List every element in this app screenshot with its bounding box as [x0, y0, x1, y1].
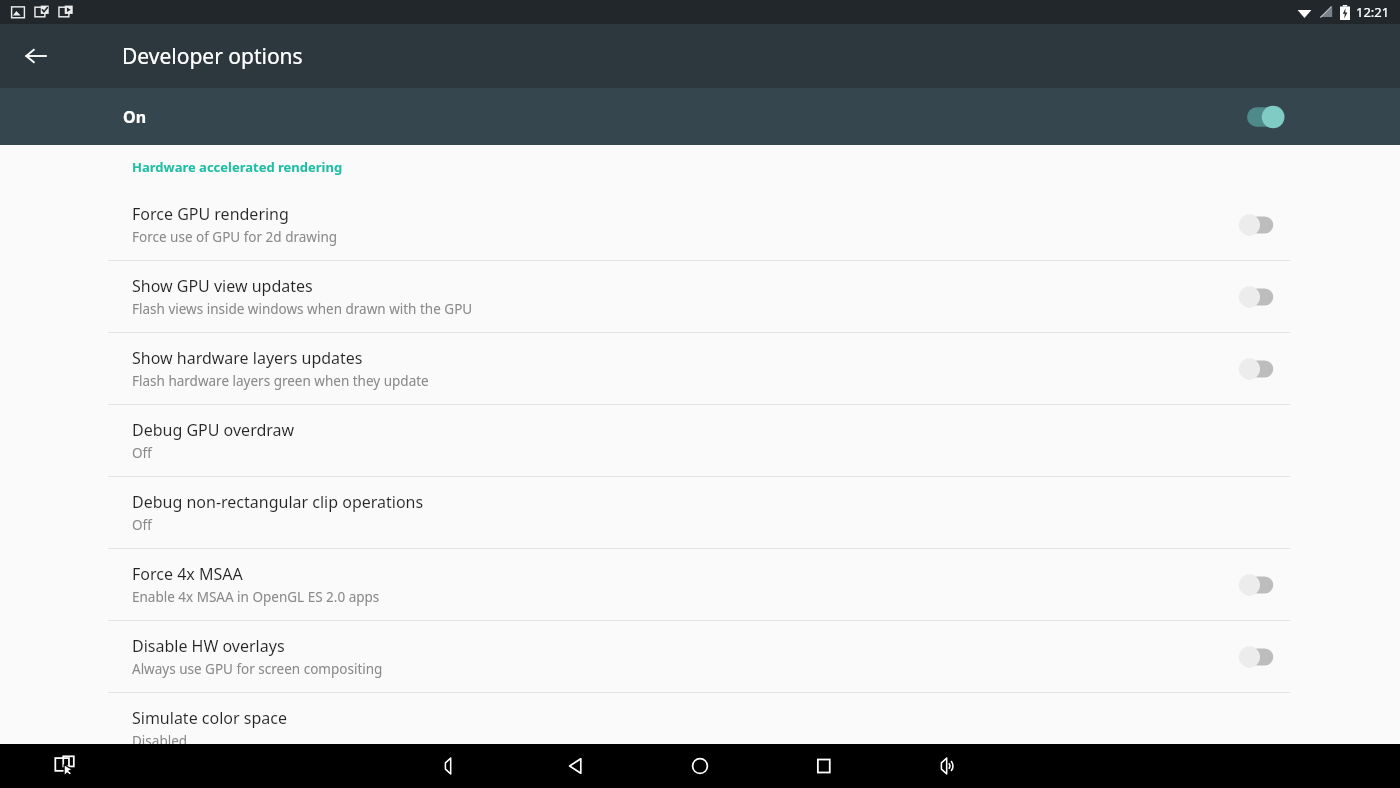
- button[interactable]: Developer options on: [1240, 97, 1288, 137]
- button[interactable]: Force 4x MSAA toggle: [1235, 564, 1283, 606]
- button[interactable]: Force GPU rendering: [0, 189, 1400, 260]
- staticText: Force GPU rendering: [132, 203, 289, 225]
- button[interactable]: Force GPU rendering toggle: [1235, 204, 1283, 246]
- staticText: Disabled: [132, 732, 188, 750]
- button[interactable]: Debug non-rectangular clip operations: [0, 477, 1400, 548]
- button[interactable]: Simulate color space: [0, 693, 1400, 764]
- button[interactable]: On: [0, 88, 1400, 145]
- staticText: Force use of GPU for 2d drawing: [132, 228, 338, 246]
- staticText: Developer options: [122, 42, 303, 71]
- staticText: Off: [132, 516, 152, 534]
- button[interactable]: Back: [14, 34, 58, 78]
- staticText: Off: [132, 444, 152, 462]
- staticText: Show GPU view updates: [132, 275, 313, 297]
- button[interactable]: Disable HW overlays: [0, 621, 1400, 692]
- staticText: Disable HW overlays: [132, 635, 285, 657]
- button[interactable]: Navigation: [800, 744, 848, 788]
- staticText: On: [123, 106, 147, 128]
- button[interactable]: Show hardware layers updates toggle: [1235, 348, 1283, 390]
- button[interactable]: Screenshot: [43, 744, 87, 788]
- button[interactable]: Show hardware layers updates: [0, 333, 1400, 404]
- button[interactable]: Navigation: [428, 744, 476, 788]
- staticText: Flash hardware layers green when they up…: [132, 372, 429, 390]
- staticText: Force 4x MSAA: [132, 563, 243, 585]
- staticText: Simulate color space: [132, 707, 287, 729]
- staticText: Always use GPU for screen compositing: [132, 660, 383, 678]
- button[interactable]: Debug GPU overdraw: [0, 405, 1400, 476]
- staticText: Enable 4x MSAA in OpenGL ES 2.0 apps: [132, 588, 380, 606]
- button[interactable]: Show GPU view updates: [0, 261, 1400, 332]
- staticText: Debug GPU overdraw: [132, 419, 295, 441]
- button[interactable]: Force 4x MSAA: [0, 549, 1400, 620]
- staticText: Show hardware layers updates: [132, 347, 363, 369]
- button[interactable]: Navigation: [552, 744, 600, 788]
- button[interactable]: Navigation: [676, 744, 724, 788]
- staticText: Hardware accelerated rendering: [132, 158, 343, 176]
- staticText: 12:21: [1356, 3, 1390, 21]
- staticText: Debug non-rectangular clip operations: [132, 491, 424, 513]
- button[interactable]: Navigation: [924, 744, 972, 788]
- button[interactable]: Show GPU view updates toggle: [1235, 276, 1283, 318]
- button[interactable]: Disable HW overlays toggle: [1235, 636, 1283, 678]
- staticText: Flash views inside windows when drawn wi…: [132, 300, 473, 318]
